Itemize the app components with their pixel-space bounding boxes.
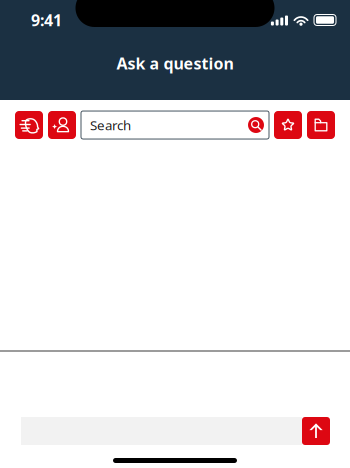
staticText: 9:41 — [31, 9, 62, 31]
button[interactable]: Favourites — [274, 111, 302, 139]
button[interactable]: Search — [81, 111, 269, 139]
button[interactable]: Send — [302, 417, 330, 445]
staticText: Ask a question — [116, 53, 233, 74]
button[interactable]: Folders — [307, 111, 335, 139]
staticText: Search — [90, 116, 131, 134]
button[interactable]: Add person — [48, 111, 76, 139]
button[interactable]: Ask AI — [15, 111, 43, 139]
